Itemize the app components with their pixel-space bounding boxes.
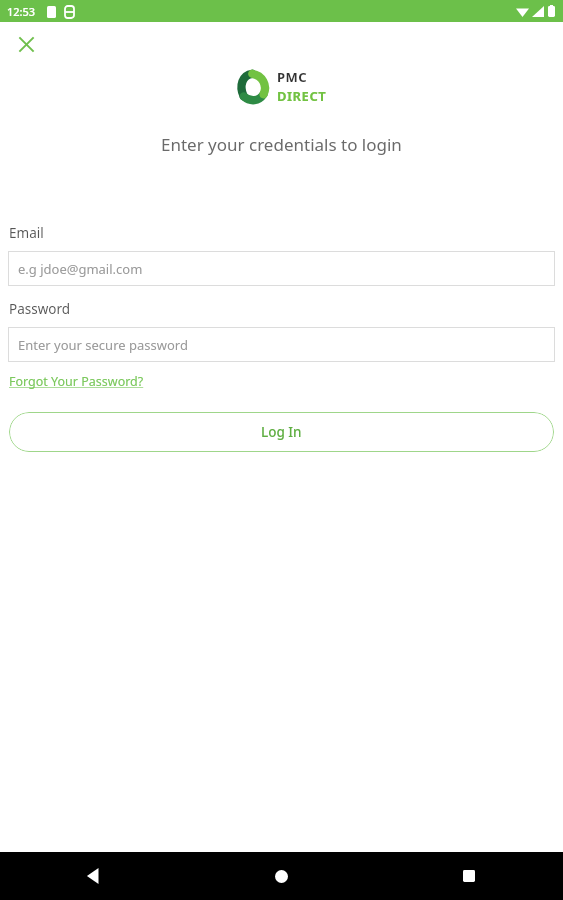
button[interactable]: Back bbox=[0, 852, 187, 900]
button[interactable]: Recent apps bbox=[375, 852, 563, 900]
staticText: Email bbox=[9, 224, 44, 242]
staticText: e.g jdoe@gmail.com bbox=[18, 260, 143, 278]
staticText: Password bbox=[9, 300, 71, 318]
button[interactable]: Enter your secure password bbox=[8, 327, 555, 362]
staticText: Forgot Your Password? bbox=[9, 373, 144, 390]
staticText: Enter your credentials to login bbox=[161, 133, 402, 156]
button[interactable]: Home bbox=[187, 852, 375, 900]
staticText: Enter your secure password bbox=[18, 336, 188, 354]
staticText: 12:53 bbox=[7, 4, 36, 19]
button[interactable]: Log In bbox=[9, 412, 554, 452]
staticText: PMC bbox=[277, 68, 308, 86]
button[interactable]: Forgot Your Password? bbox=[9, 373, 144, 390]
staticText: DIRECT bbox=[277, 87, 327, 105]
button[interactable]: Close bbox=[8, 26, 44, 62]
button[interactable]: e.g jdoe@gmail.com bbox=[8, 251, 555, 286]
staticText: Log In bbox=[261, 423, 302, 441]
